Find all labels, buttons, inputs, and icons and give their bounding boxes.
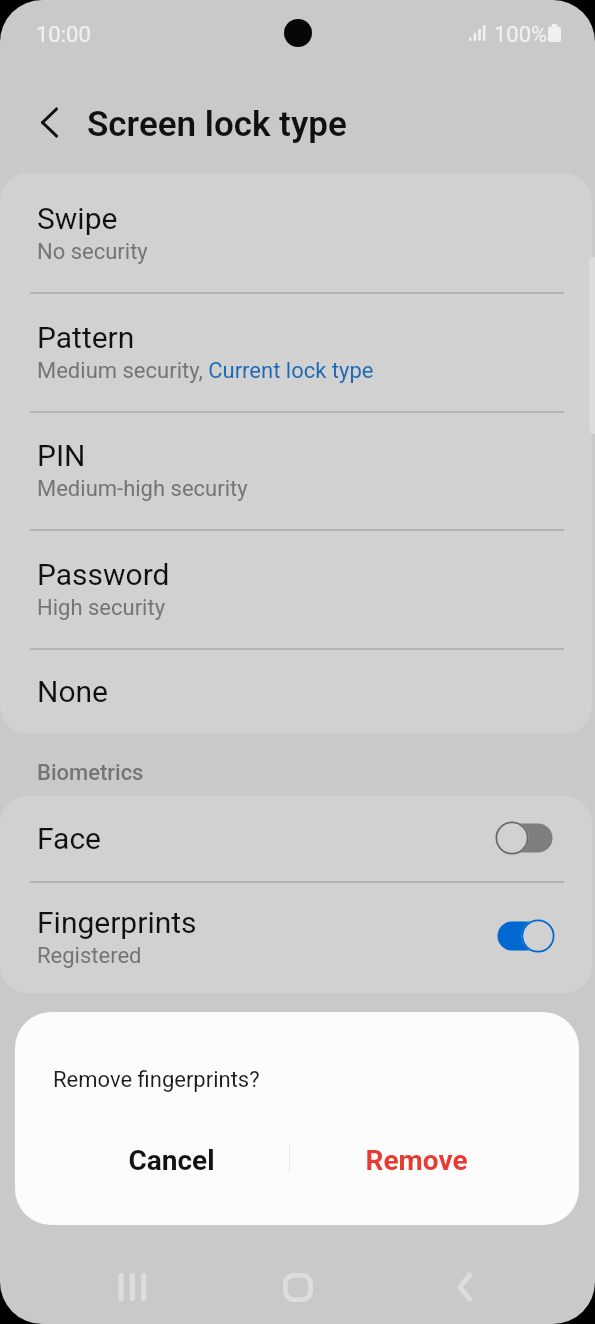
staticText: No security [37, 239, 148, 265]
button[interactable]: Navigate up [20, 95, 76, 151]
staticText: Password [37, 557, 170, 592]
button[interactable]: Cancel [42, 1131, 301, 1189]
button[interactable]: Fingerprints, on [496, 919, 554, 953]
staticText: PIN [37, 438, 86, 473]
staticText: Face [37, 821, 102, 856]
staticText: Biometrics [37, 760, 144, 786]
button[interactable]: Remove [303, 1131, 530, 1189]
staticText: Pattern [37, 320, 135, 355]
button[interactable]: Face, off [496, 821, 554, 855]
staticText: Registered [37, 943, 142, 969]
staticText: High security [37, 595, 166, 621]
staticText: Cancel [128, 1144, 215, 1177]
button[interactable]: Fingerprints [0, 881, 595, 993]
button[interactable]: PIN [0, 411, 595, 529]
button[interactable]: Recent apps [92, 1247, 172, 1324]
button[interactable]: Password [0, 529, 595, 648]
button[interactable]: Swipe [0, 173, 595, 292]
button[interactable]: Pattern [0, 292, 595, 411]
staticText: 10:00 [36, 22, 91, 48]
staticText: Remove [365, 1144, 468, 1177]
staticText: Remove fingerprints? [53, 1067, 260, 1093]
button[interactable]: Face [0, 796, 595, 881]
staticText: Medium-high security [37, 476, 248, 502]
staticText: Swipe [37, 201, 118, 236]
staticText: Medium security, Current lock type [37, 358, 374, 384]
button[interactable]: Back [425, 1247, 505, 1324]
staticText: 100% [494, 22, 548, 48]
button[interactable]: Home [258, 1247, 338, 1324]
staticText: None [37, 674, 108, 709]
staticText: Fingerprints [37, 905, 197, 940]
staticText: Screen lock type [87, 104, 347, 145]
button[interactable]: None [0, 648, 595, 734]
